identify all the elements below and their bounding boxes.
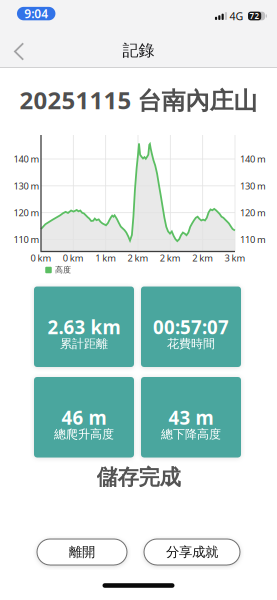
staticText: 離開: [69, 544, 95, 560]
staticText: 高度: [55, 265, 71, 275]
staticText: 00:57:07: [153, 314, 229, 339]
staticText: 9:04: [24, 6, 48, 21]
staticText: 120 m: [13, 206, 39, 219]
staticText: 0 km: [63, 252, 84, 264]
staticText: 72: [250, 11, 260, 21]
button[interactable]: Back: [4, 36, 34, 66]
staticText: 130 m: [240, 180, 266, 192]
button[interactable]: 離開: [37, 539, 127, 565]
staticText: 累計距離: [60, 336, 108, 351]
staticText: 110 m: [13, 233, 39, 246]
staticText: 花費時間: [167, 336, 215, 351]
staticText: 120 m: [240, 206, 266, 219]
button[interactable]: 分享成就: [144, 539, 240, 565]
staticText: 2.63 km: [47, 314, 120, 339]
staticText: 0 km: [30, 252, 51, 264]
staticText: 3 km: [224, 252, 245, 264]
staticText: 記錄: [122, 41, 154, 60]
staticText: 110 m: [240, 233, 266, 246]
staticText: 總爬升高度: [54, 427, 114, 442]
staticText: 4G: [229, 9, 243, 23]
staticText: 分享成就: [166, 544, 218, 560]
staticText: 20251115 台南內庄山: [19, 84, 257, 116]
staticText: 46 m: [61, 405, 106, 430]
staticText: 2 km: [160, 252, 181, 264]
staticText: 2 km: [192, 252, 213, 264]
staticText: 1 km: [95, 252, 116, 264]
staticText: 2 km: [127, 252, 148, 264]
staticText: 140 m: [240, 153, 266, 165]
staticText: 總下降高度: [161, 427, 221, 442]
staticText: 43 m: [168, 405, 213, 430]
staticText: 140 m: [13, 153, 39, 165]
staticText: 130 m: [13, 180, 39, 192]
staticText: 儲存完成: [96, 464, 180, 490]
